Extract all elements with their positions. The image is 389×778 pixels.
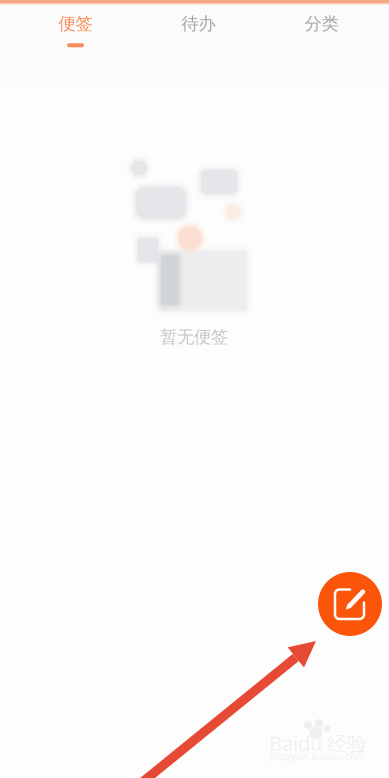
button[interactable]: 待办 (137, 0, 260, 58)
staticText: jingyan.baidu.com (270, 749, 365, 763)
staticText: Baidu 经验 (269, 730, 367, 756)
staticText: 分类 (304, 13, 338, 34)
button[interactable]: Compose new note (318, 572, 382, 636)
staticText: 便签 (58, 13, 92, 34)
button[interactable]: 便签 (14, 0, 137, 58)
staticText: 待办 (181, 13, 215, 34)
button[interactable]: 分类 (260, 0, 383, 58)
staticText: 暂无便签 (160, 326, 228, 348)
